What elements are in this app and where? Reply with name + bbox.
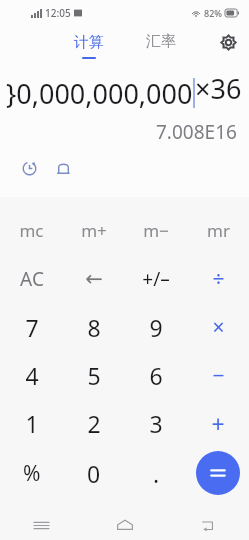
button[interactable]: 5: [63, 351, 125, 399]
button[interactable]: AC: [0, 255, 63, 303]
button[interactable]: Equals: [196, 451, 240, 495]
button[interactable]: mc: [0, 205, 63, 255]
staticText: 4: [25, 360, 39, 391]
staticText: +: [211, 408, 225, 439]
button[interactable]: ←: [63, 255, 125, 303]
button[interactable]: Back: [166, 510, 249, 540]
staticText: 2: [87, 408, 101, 439]
staticText: AC: [20, 266, 44, 292]
staticText: 汇率: [146, 32, 176, 51]
staticText: 7.008E16: [156, 119, 237, 145]
button[interactable]: 8: [63, 303, 125, 351]
staticText: 3: [149, 408, 163, 439]
button[interactable]: +: [187, 399, 249, 447]
staticText: +/–: [142, 266, 170, 292]
button[interactable]: .: [125, 447, 187, 499]
button[interactable]: Recents: [0, 510, 83, 540]
staticText: 9: [149, 312, 163, 343]
button[interactable]: 0: [63, 447, 125, 499]
staticText: %: [23, 459, 41, 488]
button[interactable]: Home: [83, 510, 166, 540]
button[interactable]: History: [18, 157, 41, 180]
button[interactable]: ÷: [187, 255, 249, 303]
staticText: ÷: [212, 265, 225, 294]
staticText: m−: [143, 219, 169, 242]
staticText: mc: [19, 219, 44, 242]
button[interactable]: 1: [0, 399, 63, 447]
staticText: 6: [149, 360, 163, 391]
button[interactable]: 7: [0, 303, 63, 351]
button[interactable]: Settings: [208, 28, 249, 57]
button[interactable]: +/–: [125, 255, 187, 303]
staticText: 82%: [204, 7, 222, 19]
button[interactable]: 计算: [62, 31, 116, 54]
staticText: 计算: [74, 33, 104, 52]
button[interactable]: 6: [125, 351, 187, 399]
button[interactable]: 汇率: [134, 28, 188, 55]
button[interactable]: 3: [125, 399, 187, 447]
staticText: m+: [81, 219, 107, 242]
button[interactable]: 9: [125, 303, 187, 351]
staticText: .: [153, 458, 160, 489]
button[interactable]: m−: [125, 205, 187, 255]
staticText: ←: [85, 267, 103, 291]
button[interactable]: Functions: [52, 157, 75, 180]
button[interactable]: ×: [187, 303, 249, 351]
button[interactable]: 2: [63, 399, 125, 447]
staticText: 1: [25, 408, 39, 439]
staticText: 8: [87, 312, 101, 343]
staticText: −: [212, 361, 225, 390]
staticText: ×365: [195, 70, 249, 116]
button[interactable]: m+: [63, 205, 125, 255]
staticText: 5: [87, 360, 101, 391]
button[interactable]: mr: [187, 205, 249, 255]
staticText: 12:05: [45, 6, 71, 20]
staticText: ×: [212, 313, 225, 342]
button[interactable]: %: [0, 447, 63, 499]
staticText: 7: [25, 312, 39, 343]
staticText: mr: [207, 219, 230, 242]
staticText: 0: [87, 458, 101, 489]
button[interactable]: 4: [0, 351, 63, 399]
staticText: }0,000,000,000: [6, 75, 193, 112]
button[interactable]: −: [187, 351, 249, 399]
